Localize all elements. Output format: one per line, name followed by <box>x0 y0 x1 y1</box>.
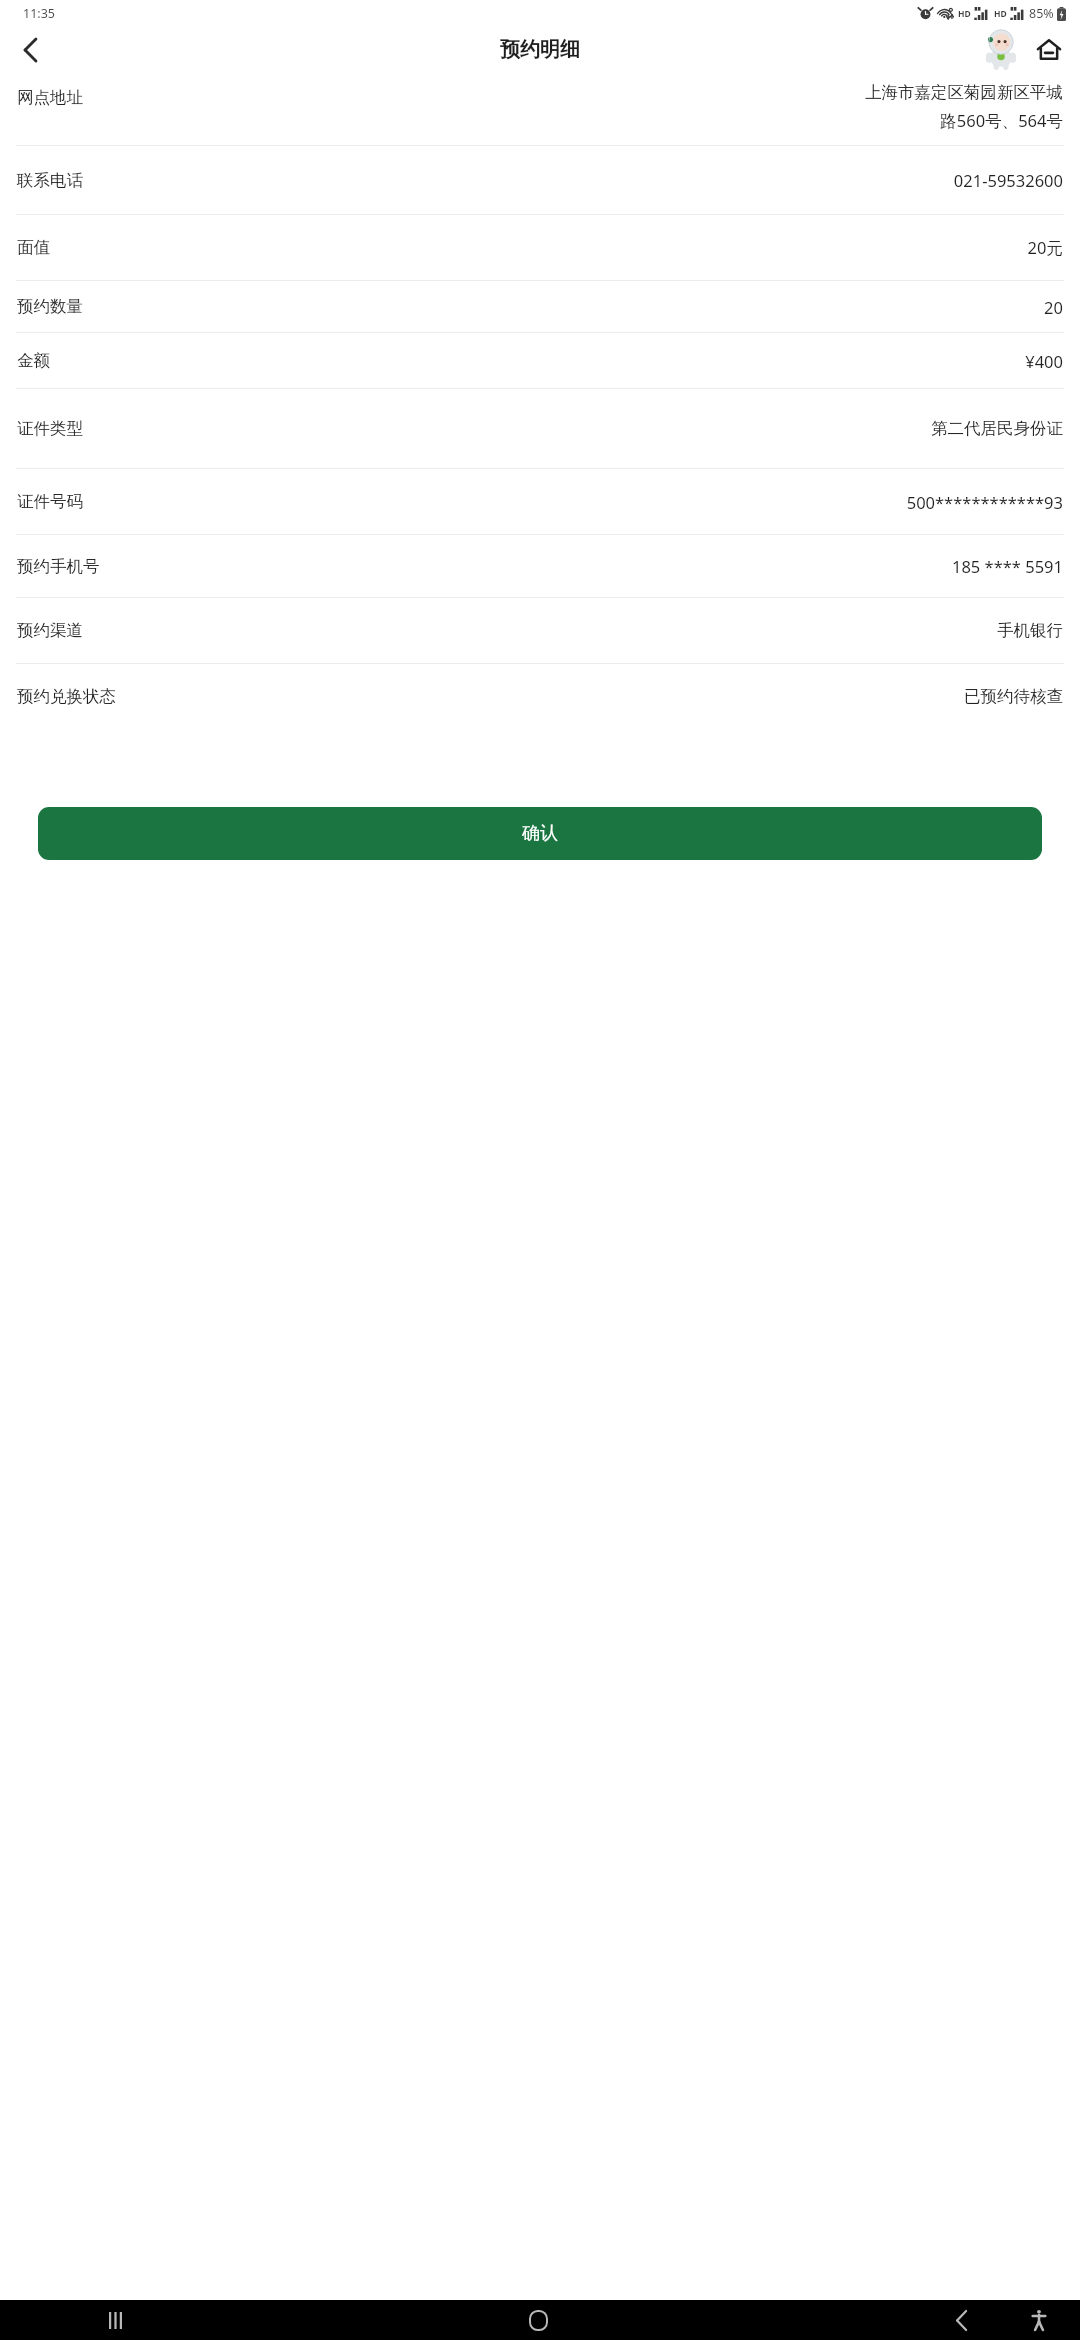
button[interactable]: Home <box>511 2300 565 2340</box>
staticText: HD <box>994 8 1007 20</box>
button[interactable]: 联系电话 <box>0 146 1080 214</box>
button[interactable]: 网点地址 <box>0 72 1080 145</box>
staticText: 021-59532600 <box>953 169 1063 191</box>
button[interactable]: Recents <box>88 2300 142 2340</box>
staticText: 确认 <box>522 822 558 845</box>
button[interactable]: 预约渠道 <box>0 598 1080 663</box>
staticText: 预约手机号 <box>17 556 100 577</box>
staticText: 已预约待核查 <box>964 686 1063 707</box>
staticText: 证件号码 <box>17 491 83 512</box>
button[interactable]: 金额 <box>0 333 1080 388</box>
button[interactable]: 预约兑换状态 <box>0 664 1080 729</box>
button[interactable]: 面值 <box>0 215 1080 280</box>
staticText: 联系电话 <box>17 170 83 191</box>
staticText: 上海市嘉定区菊园新区平城 <box>865 82 1063 103</box>
staticText: 预约渠道 <box>17 620 83 641</box>
staticText: 路560号、564号 <box>940 109 1063 132</box>
staticText: 11:35 <box>23 5 55 22</box>
staticText: 网点地址 <box>17 87 83 108</box>
button[interactable]: Back <box>8 28 52 72</box>
button[interactable]: Back <box>934 2300 988 2340</box>
staticText: 预约明细 <box>500 37 580 62</box>
button[interactable]: 预约手机号 <box>0 535 1080 597</box>
button[interactable]: 证件类型 <box>0 389 1080 468</box>
staticText: 预约数量 <box>17 296 83 317</box>
staticText: 185 **** 5591 <box>951 555 1063 577</box>
staticText: 85% <box>1029 5 1054 22</box>
staticText: HD <box>958 8 971 20</box>
button[interactable]: Assistant <box>980 29 1022 71</box>
staticText: 面值 <box>17 237 50 258</box>
staticText: 第二代居民身份证 <box>931 418 1063 439</box>
staticText: 证件类型 <box>17 418 83 439</box>
staticText: 500************93 <box>906 491 1063 513</box>
staticText: 手机银行 <box>997 620 1063 641</box>
staticText: 20 <box>1044 296 1063 318</box>
button[interactable]: 预约数量 <box>0 281 1080 332</box>
staticText: 20元 <box>1027 236 1063 259</box>
button[interactable]: Home <box>1028 29 1070 71</box>
staticText: 金额 <box>17 350 50 371</box>
button[interactable]: Accessibility <box>1012 2300 1066 2340</box>
button[interactable]: 确认 <box>38 807 1042 860</box>
button[interactable]: 证件号码 <box>0 469 1080 534</box>
staticText: 预约兑换状态 <box>17 686 116 707</box>
staticText: ¥400 <box>1025 350 1063 372</box>
